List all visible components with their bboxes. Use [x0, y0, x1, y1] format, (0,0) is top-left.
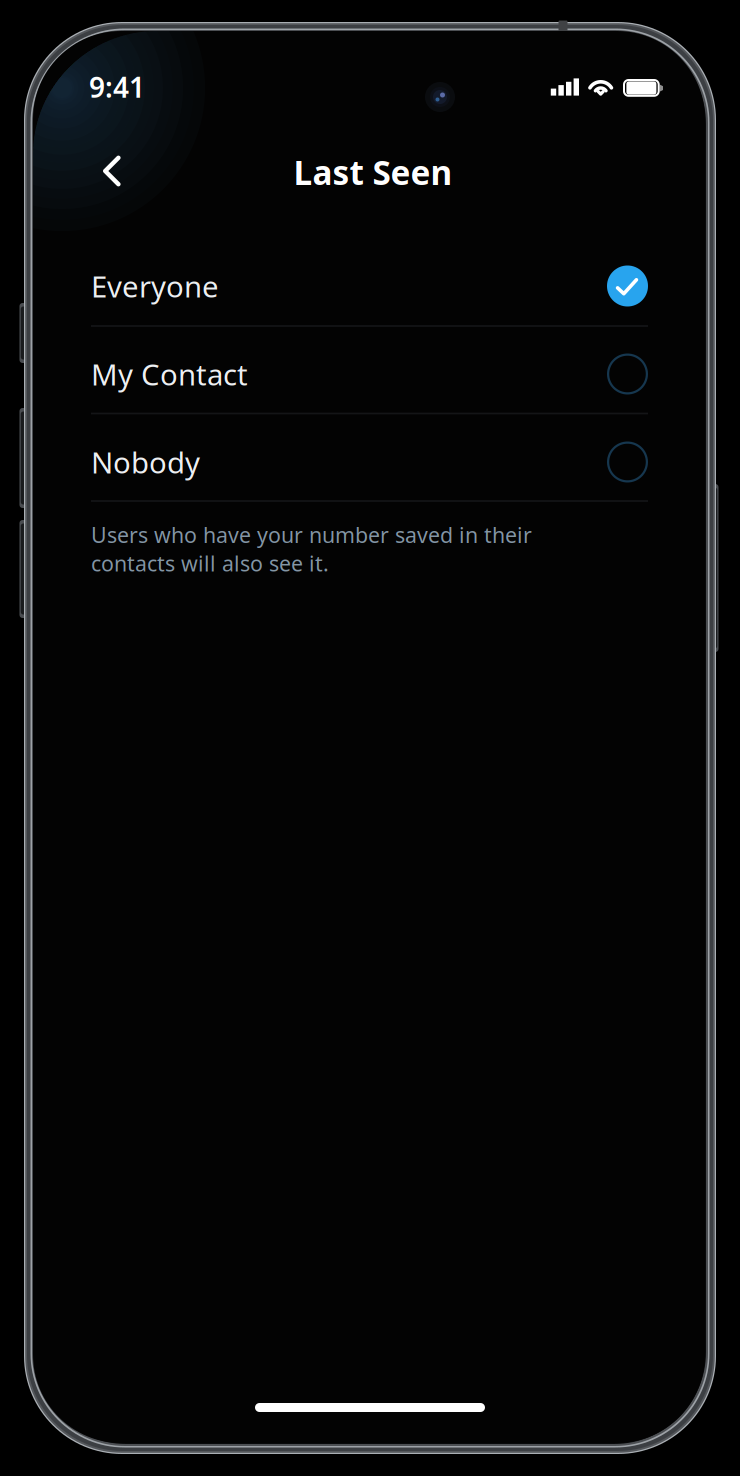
staticText: My Contact	[91, 354, 248, 393]
staticText: Users who have your number saved in thei…	[91, 521, 532, 577]
staticText: Nobody	[91, 442, 200, 481]
staticText: Last Seen	[293, 150, 452, 194]
button[interactable]: My Contact	[91, 330, 648, 418]
button[interactable]: Back	[80, 140, 142, 202]
button[interactable]: Everyone	[91, 242, 648, 330]
button[interactable]: Nobody	[91, 418, 648, 506]
staticText: 9:41	[89, 68, 145, 106]
staticText: Everyone	[91, 266, 219, 305]
